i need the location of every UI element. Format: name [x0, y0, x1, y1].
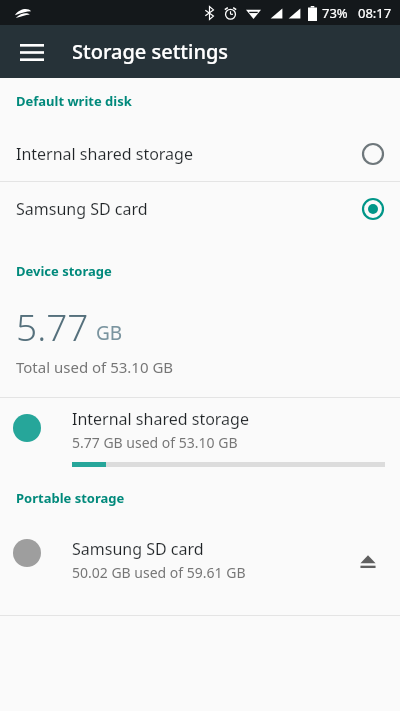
button[interactable]: Internal shared storage [0, 398, 400, 476]
staticText: Internal shared storage [16, 143, 362, 165]
staticText: Samsung SD card [16, 198, 362, 220]
staticText: Internal shared storage [72, 408, 249, 430]
staticText: 5.77 [16, 301, 89, 351]
staticText: 5.77 GB used of 53.10 GB [72, 433, 238, 452]
staticText: Default write disk [16, 92, 132, 110]
staticText: 50.02 GB used of 59.61 GB [72, 563, 246, 582]
staticText: Samsung SD card [72, 538, 204, 560]
button[interactable]: Eject Samsung SD card [348, 541, 388, 581]
staticText: Portable storage [16, 489, 125, 507]
button[interactable]: Internal shared storage [0, 127, 400, 181]
button[interactable]: Samsung SD card [0, 528, 400, 594]
staticText: GB [96, 320, 123, 346]
staticText: 73% [322, 4, 348, 22]
staticText: Total used of 53.10 GB [16, 357, 174, 377]
staticText: Storage settings [72, 38, 229, 65]
staticText: 08:17 [358, 4, 392, 22]
button[interactable]: Open navigation menu [10, 30, 54, 74]
button[interactable]: Samsung SD card [0, 182, 400, 236]
staticText: Device storage [16, 262, 112, 280]
